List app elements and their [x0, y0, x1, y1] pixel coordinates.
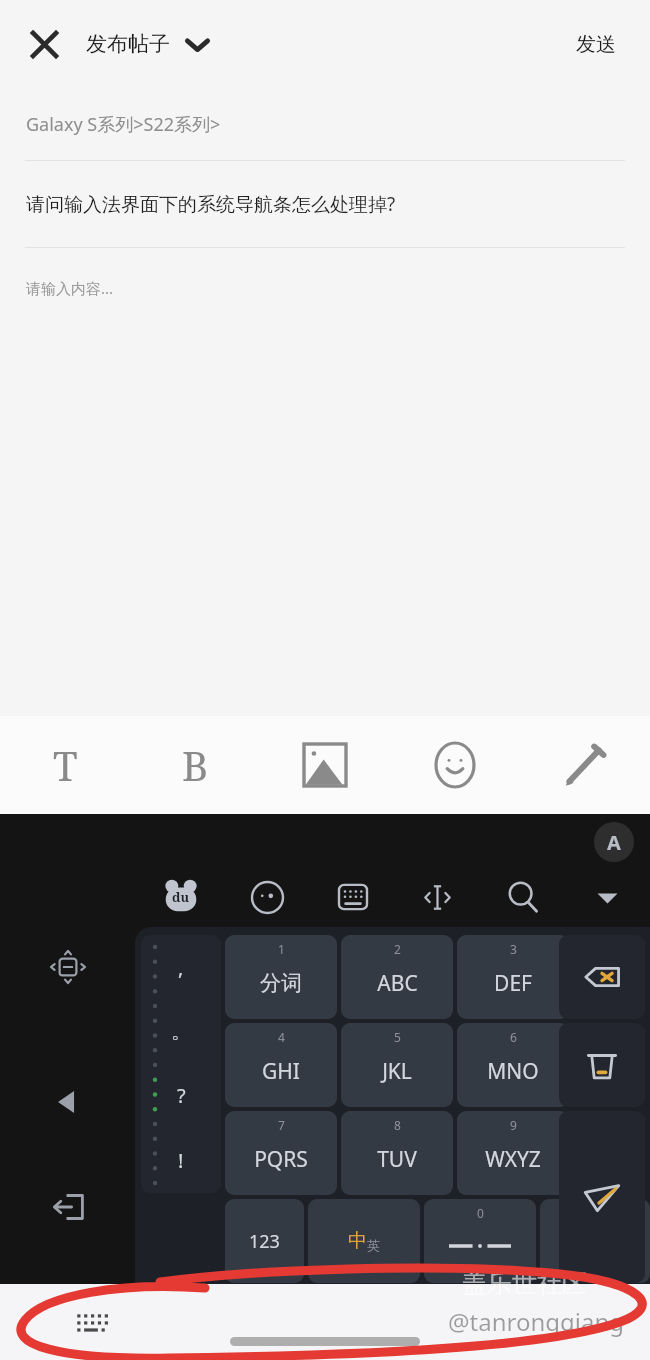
button[interactable]: Bold	[130, 716, 260, 814]
staticText: 2	[394, 941, 401, 957]
button[interactable]: Hide keyboard	[39, 1178, 97, 1236]
staticText: 1	[278, 941, 285, 957]
staticText: 9	[510, 1117, 517, 1133]
button[interactable]: Search	[480, 862, 565, 932]
button[interactable]: Baidu input	[138, 862, 224, 932]
staticText: 中	[348, 1229, 367, 1253]
button[interactable]: 请问输入法界面下的系统导航条怎么处理掉?	[0, 161, 650, 247]
button[interactable]: Emoji	[390, 716, 520, 814]
staticText: 发布帖子	[86, 31, 170, 57]
button[interactable]: Cursor control	[395, 862, 480, 932]
button[interactable]: Previous	[38, 1073, 96, 1131]
staticText: !	[178, 1147, 184, 1174]
staticText: 0	[477, 1205, 484, 1221]
button[interactable]: Collapse keyboard	[565, 862, 650, 932]
staticText: DEF	[494, 969, 532, 998]
button[interactable]: Draw	[520, 716, 650, 814]
staticText: GHI	[262, 1057, 300, 1086]
staticText: 发送	[576, 32, 616, 57]
staticText: 。	[171, 1019, 191, 1044]
button[interactable]: 123	[225, 1199, 304, 1283]
staticText: 英	[367, 1237, 380, 1253]
staticText: ?	[177, 1082, 186, 1109]
staticText: 3	[510, 941, 517, 957]
button[interactable]: 3	[457, 935, 569, 1019]
staticText: ,	[178, 954, 184, 981]
button[interactable]: Insert image	[260, 716, 390, 814]
button[interactable]: Text style	[0, 716, 130, 814]
button[interactable]: 6	[457, 1023, 569, 1107]
staticText: ABC	[377, 969, 418, 998]
button[interactable]: Keyboard layout	[310, 862, 395, 932]
staticText: 5	[394, 1029, 401, 1045]
button[interactable]: 中	[308, 1199, 420, 1283]
button[interactable]: 1	[225, 935, 337, 1019]
staticText: JKL	[382, 1057, 412, 1086]
button[interactable]: Close	[20, 20, 68, 68]
staticText: T	[53, 738, 78, 792]
staticText: TUV	[377, 1145, 417, 1174]
button[interactable]: 8	[341, 1111, 453, 1195]
staticText: PQRS	[254, 1145, 308, 1174]
staticText: 8	[394, 1117, 401, 1133]
button[interactable]: Assistant	[594, 822, 634, 862]
staticText: MNO	[487, 1057, 539, 1086]
staticText: 4	[278, 1029, 285, 1045]
button[interactable]: 符号	[540, 1199, 650, 1283]
staticText: WXYZ	[485, 1145, 541, 1174]
staticText: 请输入内容...	[26, 278, 114, 298]
button[interactable]: 发送	[568, 22, 624, 67]
button[interactable]: Punctuation	[141, 935, 221, 1193]
button[interactable]: 9	[457, 1111, 569, 1195]
staticText: 6	[510, 1029, 517, 1045]
button[interactable]: Backspace	[559, 935, 645, 1019]
button[interactable]: Switch keyboard	[66, 1297, 116, 1347]
staticText: 7	[278, 1117, 285, 1133]
button[interactable]: Move keyboard	[39, 938, 97, 996]
staticText: B	[182, 738, 209, 792]
button[interactable]: Space	[424, 1199, 536, 1283]
staticText: Galaxy S系列>S22系列>	[26, 112, 221, 137]
button[interactable]: 4	[225, 1023, 337, 1107]
staticText: du	[172, 888, 190, 906]
button[interactable]: 5	[341, 1023, 453, 1107]
button[interactable]: Emoji	[224, 862, 310, 932]
button[interactable]: 发布帖子	[80, 23, 215, 65]
staticText: @tanrongqiang	[448, 1305, 625, 1338]
staticText: 分词	[260, 970, 302, 996]
staticText: A	[607, 829, 621, 856]
button[interactable]: Galaxy S系列>S22系列>	[0, 88, 650, 160]
button[interactable]: Clear	[559, 1023, 645, 1107]
staticText: 123	[249, 1229, 280, 1254]
staticText: 请问输入法界面下的系统导航条怎么处理掉?	[26, 191, 396, 217]
button[interactable]: Send	[559, 1111, 645, 1283]
button[interactable]: 2	[341, 935, 453, 1019]
staticText: 盖乐世社区	[462, 1268, 587, 1299]
button[interactable]: 7	[225, 1111, 337, 1195]
